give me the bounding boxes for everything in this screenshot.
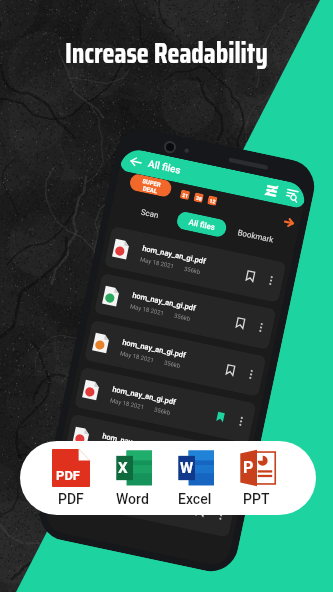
button[interactable]: Bookmark (243, 268, 258, 284)
staticText: PDF (58, 491, 84, 507)
staticText: 21 (182, 192, 189, 199)
staticText: May 18 2021 (89, 490, 125, 504)
staticText: 356kb (163, 359, 182, 369)
staticText: PDF (56, 468, 80, 483)
staticText: hom_nay_an_gi.pdf (141, 244, 207, 266)
button[interactable]: hom_nay_an_gi.pdf (60, 462, 231, 536)
staticText: Scan (140, 208, 159, 220)
button[interactable]: Grid view (264, 183, 279, 198)
staticText: 356kb (143, 453, 162, 463)
button[interactable]: More options (254, 321, 267, 334)
staticText: 38 (195, 195, 203, 202)
staticText: May 18 2021 (99, 443, 135, 457)
staticText: hom_nay_an_gi.pdf (102, 431, 167, 454)
staticText: PPT (243, 491, 270, 507)
staticText: W (180, 459, 194, 477)
staticText: Word (116, 491, 149, 507)
staticText: hom_nay_an_gi.pdf (131, 291, 197, 313)
staticText: X (118, 459, 128, 477)
button[interactable]: hom_nay_an_gi.pdf (90, 321, 261, 396)
staticText: May 18 2021 (139, 255, 175, 269)
button[interactable]: More options (215, 509, 228, 522)
staticText: hom_nay_an_gi.pdf (112, 384, 177, 407)
button[interactable]: P (226, 449, 287, 507)
button[interactable]: Bookmark (223, 362, 238, 378)
staticText: Increase Readability (65, 31, 268, 75)
button[interactable]: Bookmark (193, 503, 208, 519)
staticText: Excel (178, 491, 212, 507)
staticText: hom_nay_an_gi.pdf (121, 338, 187, 360)
staticText: 356kb (153, 406, 172, 416)
button[interactable]: Bookmark (203, 456, 218, 472)
staticText: DEAL (142, 184, 158, 194)
staticText: May 18 2021 (119, 349, 155, 363)
button[interactable]: More options (244, 368, 257, 381)
button[interactable]: PDF (40, 449, 101, 507)
staticText: 356kb (173, 312, 192, 322)
button[interactable]: Bookmark (213, 409, 228, 425)
staticText: All files (188, 218, 216, 232)
button[interactable]: hom_nay_an_gi.pdf (70, 415, 241, 489)
staticText: hom_nay_an_gi.pdf (92, 478, 157, 501)
button[interactable]: hom_nay_an_gi.pdf (100, 274, 271, 349)
button[interactable]: Scan (140, 208, 159, 220)
staticText: May 18 2021 (109, 396, 145, 410)
staticText: May 18 2021 (129, 302, 165, 316)
staticText: P (243, 458, 254, 477)
other: Next (283, 217, 295, 228)
button[interactable]: Bookmark (237, 228, 275, 245)
staticText: 356kb (133, 499, 152, 510)
button[interactable]: All files (175, 210, 228, 238)
button[interactable]: W (164, 449, 225, 507)
button[interactable]: X (102, 449, 163, 507)
button[interactable]: Back (129, 155, 142, 168)
staticText: All files (147, 158, 183, 177)
button[interactable]: SUPER (128, 173, 173, 198)
staticText: Bookmark (237, 228, 275, 245)
button[interactable]: hom_nay_an_gi.pdf (110, 227, 281, 302)
staticText: 12 (209, 198, 216, 205)
button[interactable]: hom_nay_an_gi.pdf (80, 368, 251, 443)
button[interactable]: More options (264, 274, 277, 287)
button[interactable]: Search (284, 187, 300, 203)
button[interactable]: More options (234, 415, 247, 428)
staticText: 356kb (183, 265, 201, 275)
button[interactable]: Bookmark (233, 315, 248, 331)
staticText: SUPER (142, 177, 162, 188)
